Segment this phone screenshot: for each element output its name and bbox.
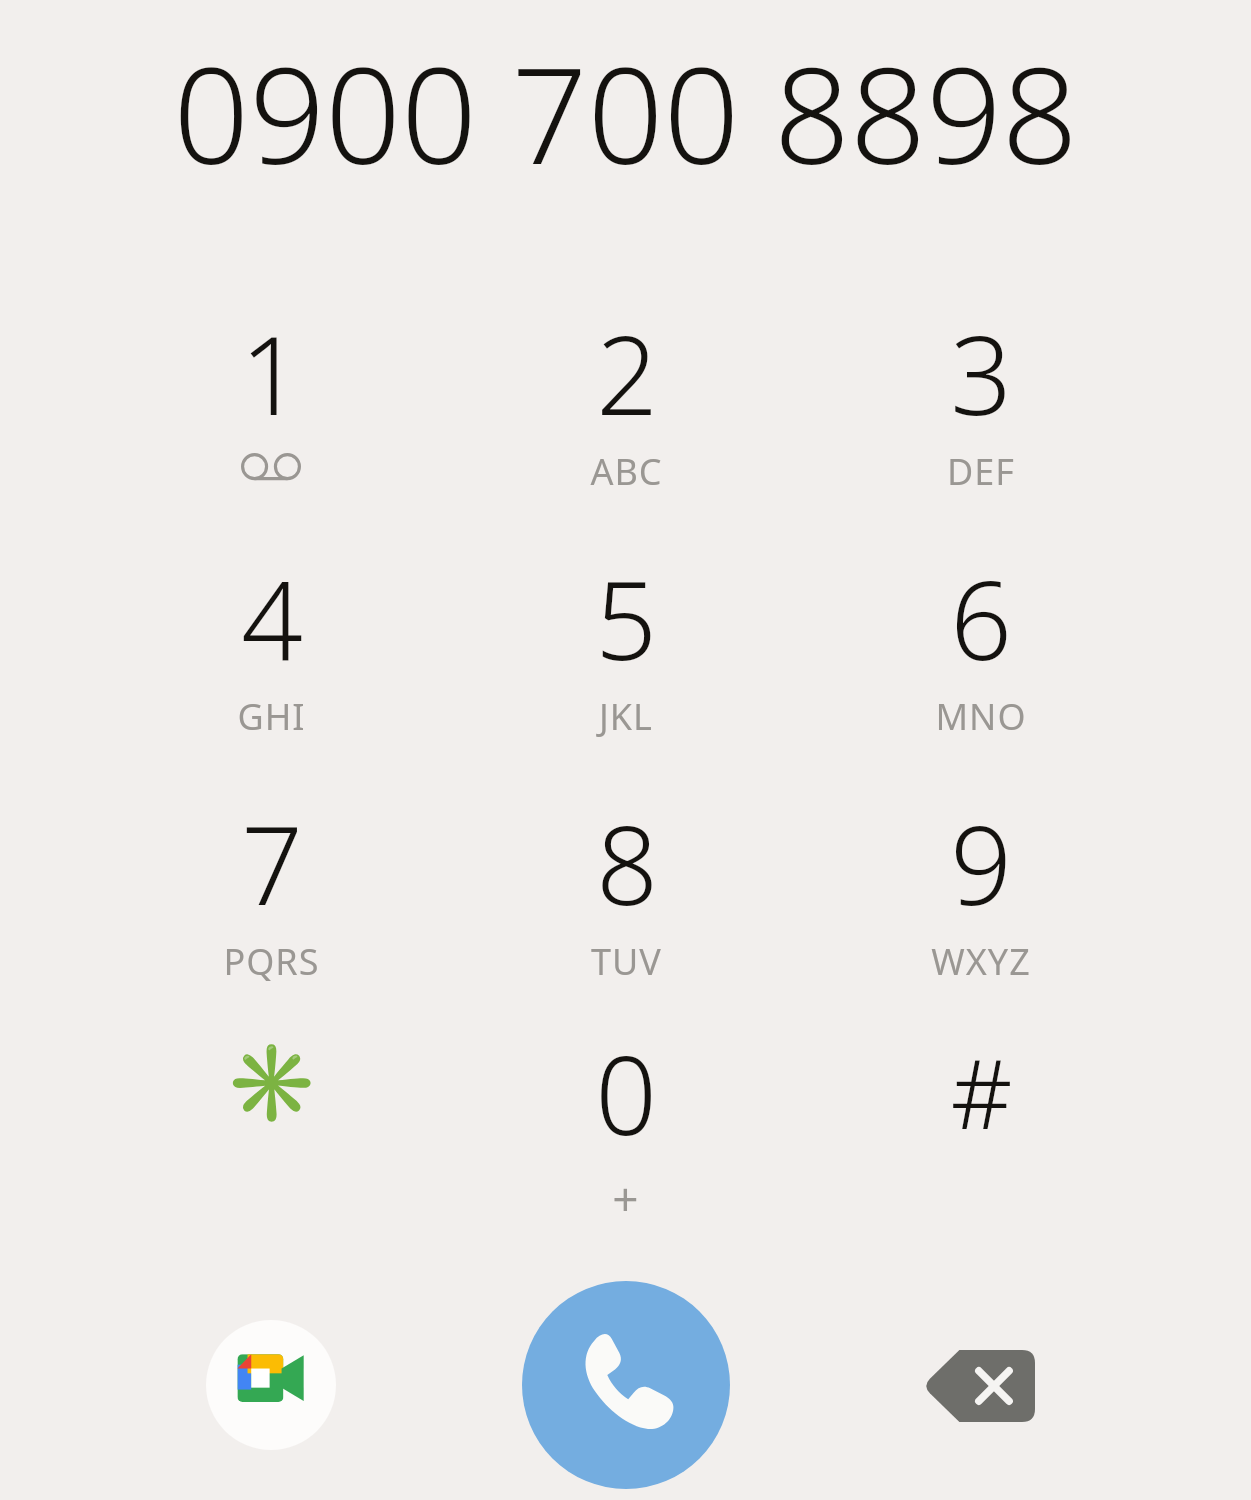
button[interactable]: 5 [516, 545, 736, 760]
staticText: ✳ [224, 1038, 319, 1127]
staticText: 1 [240, 300, 302, 447]
staticText: 9 [950, 790, 1012, 937]
staticText: PQRS [223, 937, 320, 986]
button[interactable]: 1 [161, 300, 381, 515]
button[interactable]: Backspace [912, 1336, 1050, 1436]
staticText: JKL [599, 692, 653, 741]
button[interactable]: 4 [161, 545, 381, 760]
staticText: MNO [935, 692, 1027, 741]
button[interactable]: # [871, 1020, 1091, 1235]
button[interactable]: 3 [871, 300, 1091, 515]
button[interactable]: 0 [516, 1020, 736, 1235]
staticText: 0900 700 8898 [173, 22, 1078, 203]
staticText: 6 [950, 545, 1012, 692]
staticText: + [612, 1167, 640, 1230]
button[interactable]: ✳ [161, 1020, 381, 1235]
staticText: 4 [241, 545, 303, 692]
staticText: 7 [241, 790, 303, 937]
staticText: 3 [950, 300, 1012, 447]
button[interactable]: Video call with Google Meet [206, 1320, 336, 1450]
staticText: GHI [237, 692, 306, 741]
button[interactable]: 7 [161, 790, 381, 1005]
button[interactable]: 9 [871, 790, 1091, 1005]
staticText: 2 [596, 300, 658, 447]
button[interactable]: 2 [516, 300, 736, 515]
button[interactable]: 6 [871, 545, 1091, 760]
staticText: TUV [591, 937, 662, 986]
staticText: WXYZ [931, 937, 1031, 986]
staticText: 5 [595, 545, 657, 692]
staticText: 8 [596, 790, 658, 937]
staticText: 0 [595, 1020, 657, 1167]
staticText: ABC [590, 447, 663, 496]
button[interactable]: 8 [516, 790, 736, 1005]
staticText: # [950, 1026, 1013, 1157]
staticText: DEF [947, 447, 1015, 496]
button[interactable]: Call [522, 1281, 730, 1489]
